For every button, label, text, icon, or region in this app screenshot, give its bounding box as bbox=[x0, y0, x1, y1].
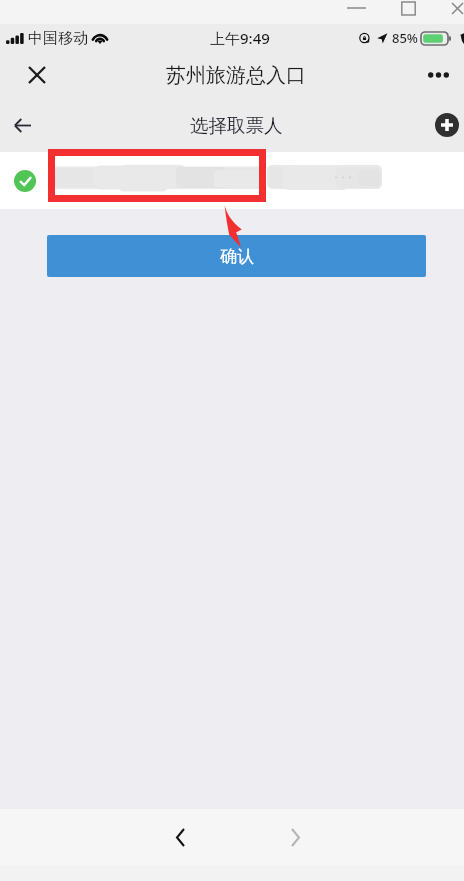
button[interactable]: Forward bbox=[278, 820, 312, 854]
button[interactable]: Add bbox=[435, 113, 459, 137]
button[interactable]: Close bbox=[434, 0, 464, 20]
staticText: 中国移动 bbox=[28, 29, 88, 48]
button[interactable]: Back bbox=[5, 108, 39, 142]
button[interactable]: More options bbox=[421, 58, 455, 92]
staticText: 选择取票人 bbox=[190, 114, 283, 137]
button[interactable]: Back bbox=[163, 820, 197, 854]
staticText: 上午9:49 bbox=[210, 28, 270, 48]
button[interactable]: 确认 bbox=[47, 235, 426, 277]
button[interactable] bbox=[0, 152, 464, 209]
staticText: 确认 bbox=[220, 246, 254, 267]
button[interactable]: Maximize bbox=[382, 0, 434, 20]
button[interactable]: Minimize bbox=[330, 0, 382, 20]
button[interactable]: Close bbox=[21, 59, 53, 91]
staticText: 苏州旅游总入口 bbox=[166, 63, 306, 88]
staticText: 85% bbox=[392, 29, 418, 47]
